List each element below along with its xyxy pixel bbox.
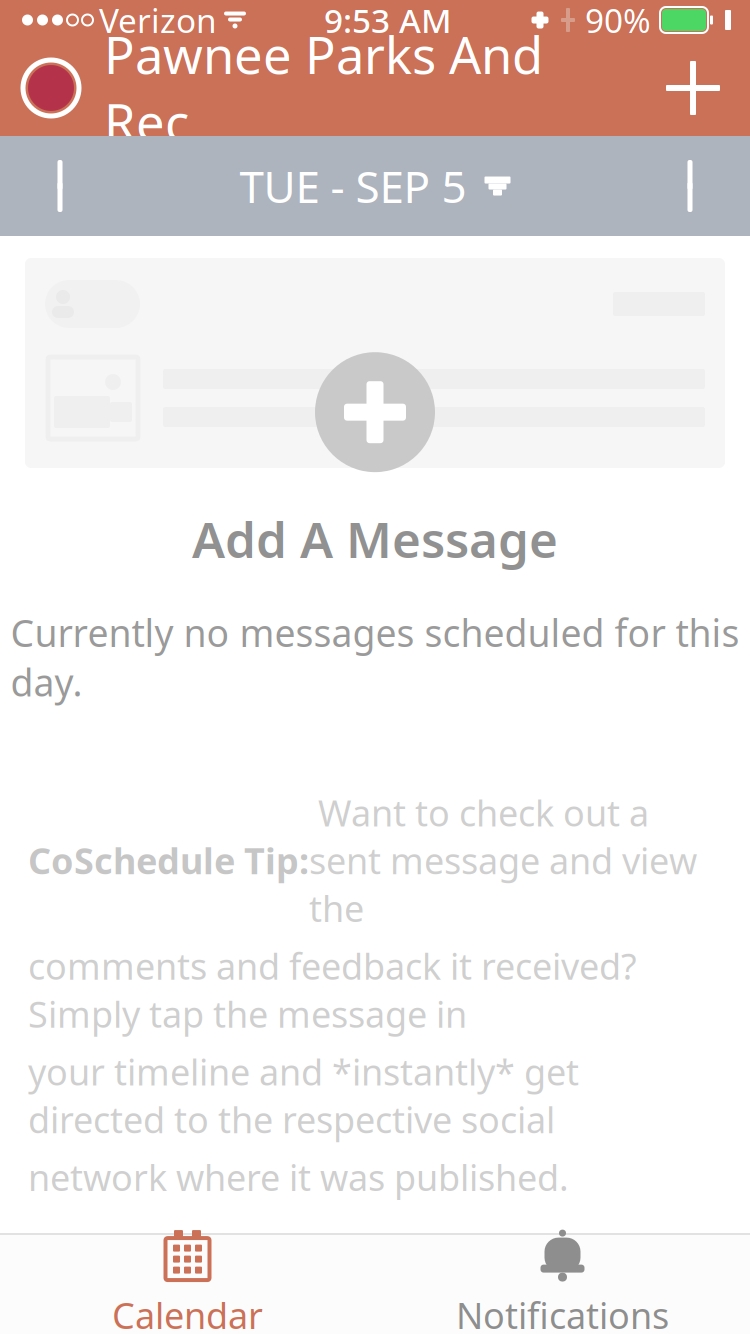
button[interactable]: Account: [18, 55, 84, 121]
button[interactable]: Previous day: [0, 136, 110, 236]
staticText: Want to check out a sent message and vie…: [309, 788, 697, 932]
staticText: Add A Message: [192, 506, 558, 572]
button[interactable]: Add: [648, 40, 738, 136]
staticText: 9:53 AM: [324, 0, 452, 42]
staticText: Pawnee Parks And Rec: [104, 21, 543, 155]
staticText: Notifications: [456, 1291, 669, 1334]
staticText: network where it was published.: [28, 1153, 569, 1201]
staticText: 90%: [585, 0, 651, 42]
staticText: Currently no messages scheduled for this…: [10, 608, 739, 707]
button[interactable]: TUE - SEP 5: [219, 136, 530, 236]
staticText: your timeline and *instantly* get direct…: [28, 1048, 579, 1143]
staticText: CoSchedule Tip:: [28, 836, 309, 884]
button[interactable]: Calendar: [0, 1235, 375, 1334]
staticText: Calendar: [112, 1291, 263, 1334]
button[interactable]: Notifications: [375, 1235, 750, 1334]
staticText: Verizon: [99, 0, 217, 42]
staticText: comments and feedback it received? Simpl…: [28, 942, 637, 1038]
button[interactable]: Next day: [640, 136, 750, 236]
button[interactable]: Add A Message: [192, 352, 558, 572]
staticText: TUE - SEP 5: [239, 157, 466, 215]
